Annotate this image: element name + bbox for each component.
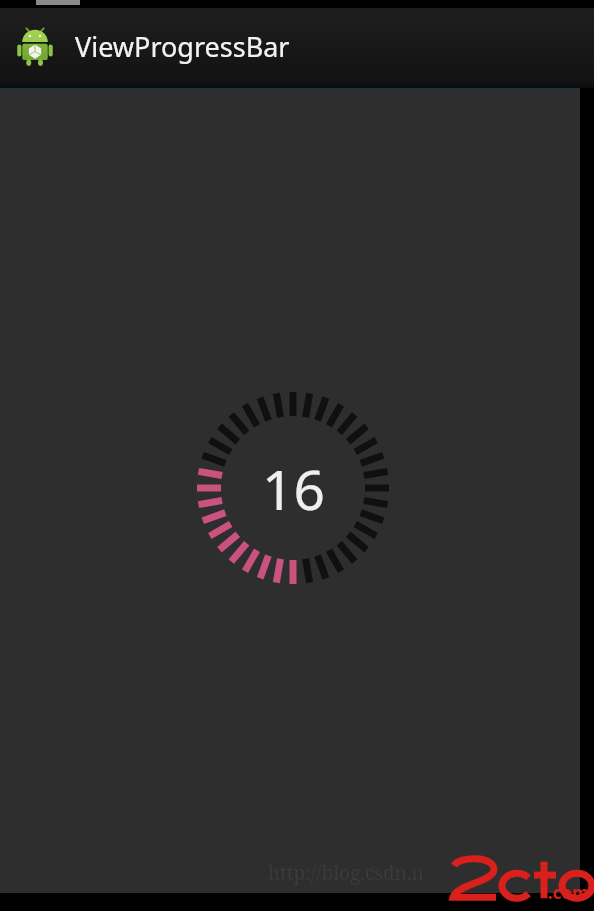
button[interactable]: Progress 16 percent <box>197 392 389 584</box>
staticText: 16 <box>262 451 325 526</box>
staticText: .com <box>548 881 589 904</box>
button[interactable]: ViewProgressBar <box>0 8 594 84</box>
staticText: http://blog.csdn.n <box>268 860 424 886</box>
staticText: ViewProgressBar <box>75 28 290 65</box>
